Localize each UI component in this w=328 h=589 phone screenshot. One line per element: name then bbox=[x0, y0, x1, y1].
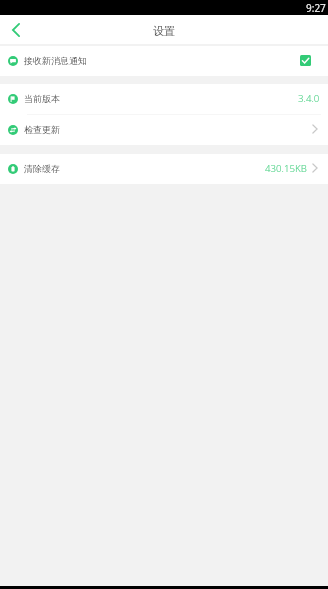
staticText: 3.4.0 bbox=[298, 92, 320, 105]
staticText: 当前版本 bbox=[24, 93, 60, 104]
button[interactable]: Receive new message notifications bbox=[300, 55, 311, 66]
staticText: 接收新消息通知 bbox=[24, 55, 87, 66]
staticText: 430.15KB bbox=[265, 162, 307, 175]
button[interactable]: 检查更新 bbox=[0, 115, 328, 145]
button[interactable]: Back bbox=[0, 15, 30, 44]
button[interactable]: 清除缓存 bbox=[0, 154, 328, 184]
button[interactable]: 接收新消息通知 bbox=[0, 46, 328, 76]
staticText: 检查更新 bbox=[24, 124, 60, 135]
staticText: 清除缓存 bbox=[24, 163, 60, 174]
button[interactable]: 当前版本 bbox=[0, 84, 328, 114]
staticText: 9:27 bbox=[306, 1, 326, 15]
staticText: 设置 bbox=[153, 24, 175, 38]
